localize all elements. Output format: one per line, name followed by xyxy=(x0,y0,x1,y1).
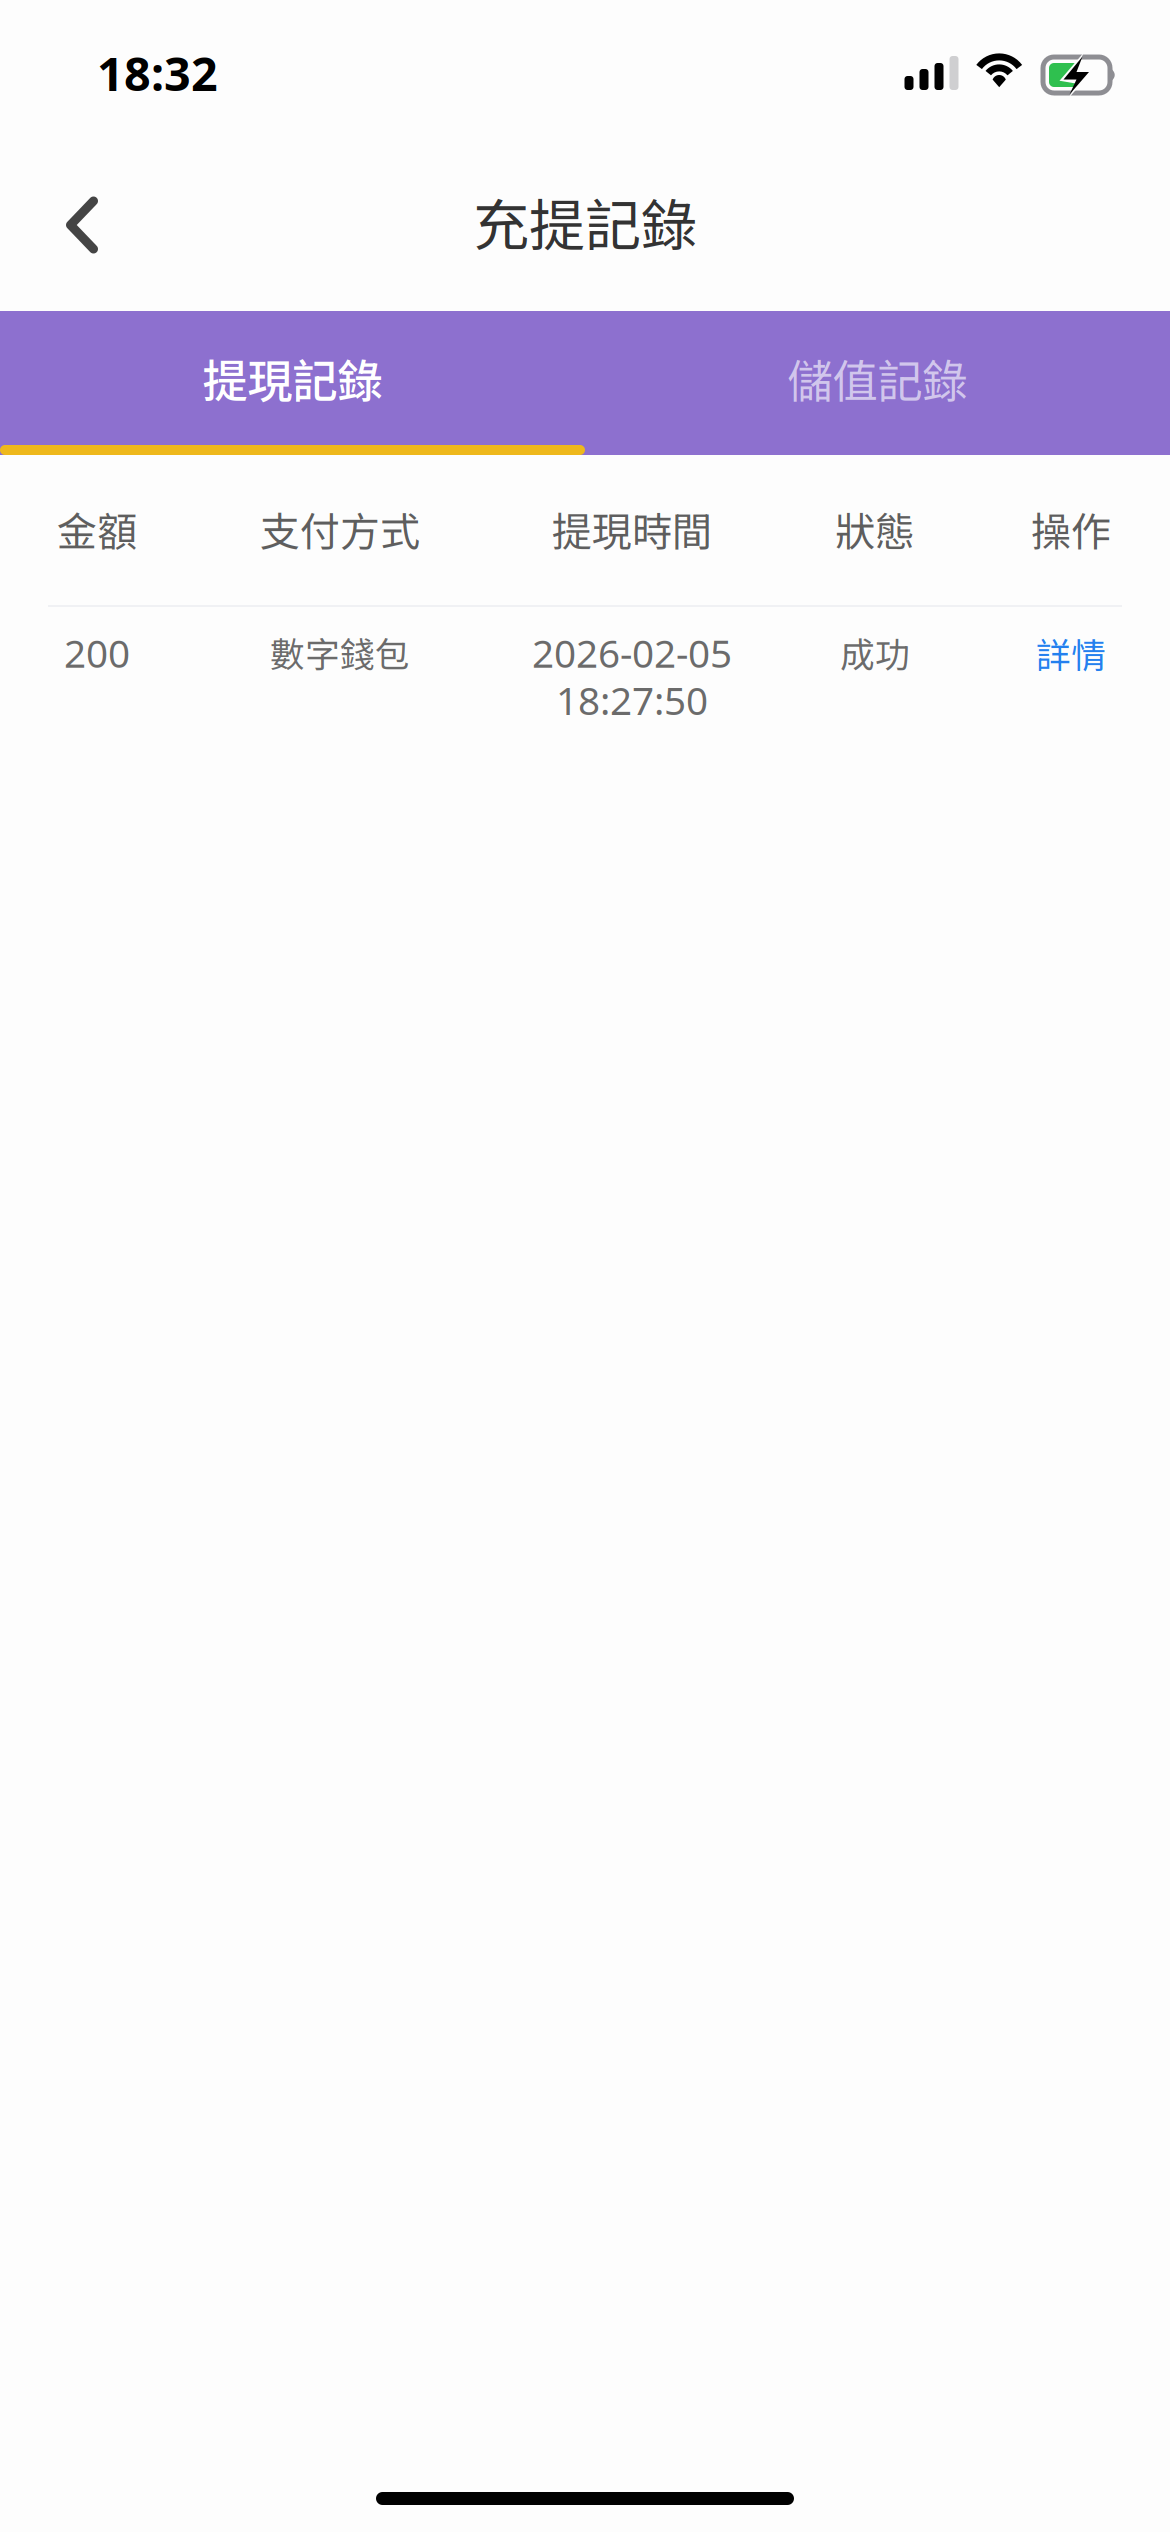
staticText: 操作 xyxy=(1031,500,1111,558)
staticText: 18:27:50 xyxy=(556,674,708,726)
staticText: 狀態 xyxy=(835,500,915,558)
staticText: 2026-02-05 xyxy=(532,627,732,678)
staticText: 儲值記錄 xyxy=(787,345,967,411)
staticText: 成功 xyxy=(840,627,910,677)
staticText: 提現記錄 xyxy=(202,345,382,411)
staticText: 18:32 xyxy=(97,42,218,104)
staticText: 提現時間 xyxy=(552,500,712,558)
button[interactable]: 提現記錄 xyxy=(0,311,585,455)
staticText: 充提記錄 xyxy=(473,181,697,262)
staticText: 200 xyxy=(64,627,130,678)
staticText: 支付方式 xyxy=(260,500,420,558)
staticText: 金額 xyxy=(57,500,137,558)
staticText: 詳情 xyxy=(1036,628,1106,678)
staticText: 數字錢包 xyxy=(270,627,410,677)
button[interactable]: 儲值記錄 xyxy=(585,311,1170,455)
button[interactable]: Back xyxy=(29,172,135,278)
button[interactable]: 詳情 xyxy=(972,627,1170,679)
